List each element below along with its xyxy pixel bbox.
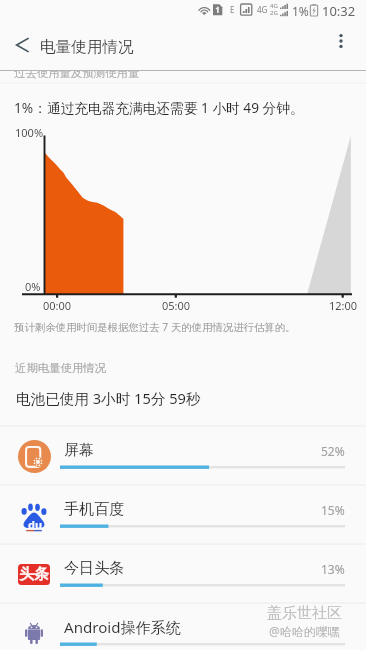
staticText: 1%	[292, 3, 309, 19]
staticText: 近期电量使用情况	[15, 361, 107, 375]
button[interactable]: Android操作系统	[0, 604, 366, 650]
staticText: 2G	[270, 9, 278, 17]
staticText: 52%	[321, 443, 345, 459]
staticText: 电量使用情况	[40, 37, 134, 57]
button[interactable]: Back	[2, 25, 42, 65]
staticText: 100%	[15, 125, 44, 140]
staticText: 盖乐世社区	[267, 604, 342, 623]
staticText: 1%：通过充电器充满电还需要 1 小时 49 分钟。	[14, 98, 304, 117]
button[interactable]: More options	[325, 25, 357, 57]
staticText: @哈哈的嚛嘿	[269, 623, 340, 639]
staticText: 10:32	[322, 2, 356, 20]
staticText: 头条	[19, 565, 49, 584]
staticText: E	[230, 4, 235, 15]
staticText: 05:00	[162, 298, 191, 313]
staticText: 00:00	[43, 298, 72, 313]
staticText: 13%	[321, 561, 345, 577]
staticText: 电池已使用 3小时 15分 59秒	[16, 388, 201, 408]
staticText: 手机百度	[64, 499, 125, 518]
staticText: 12:00	[329, 298, 358, 313]
button[interactable]: du	[0, 486, 366, 544]
staticText: 4G	[257, 4, 268, 15]
staticText: 预计剩余使用时间是根据您过去 7 天的使用情况进行估算的。	[14, 320, 296, 334]
staticText: Android操作系统	[64, 617, 181, 638]
staticText: 0%	[25, 279, 41, 294]
button[interactable]: 屏幕	[0, 427, 366, 485]
staticText: 今日头条	[64, 558, 125, 577]
staticText: 4G	[270, 2, 278, 10]
staticText: du	[28, 517, 43, 532]
staticText: 屏幕	[64, 440, 95, 459]
staticText: 过去使用量及预测使用量	[14, 71, 140, 79]
staticText: 15%	[321, 502, 345, 518]
button[interactable]: 头条	[0, 545, 366, 603]
